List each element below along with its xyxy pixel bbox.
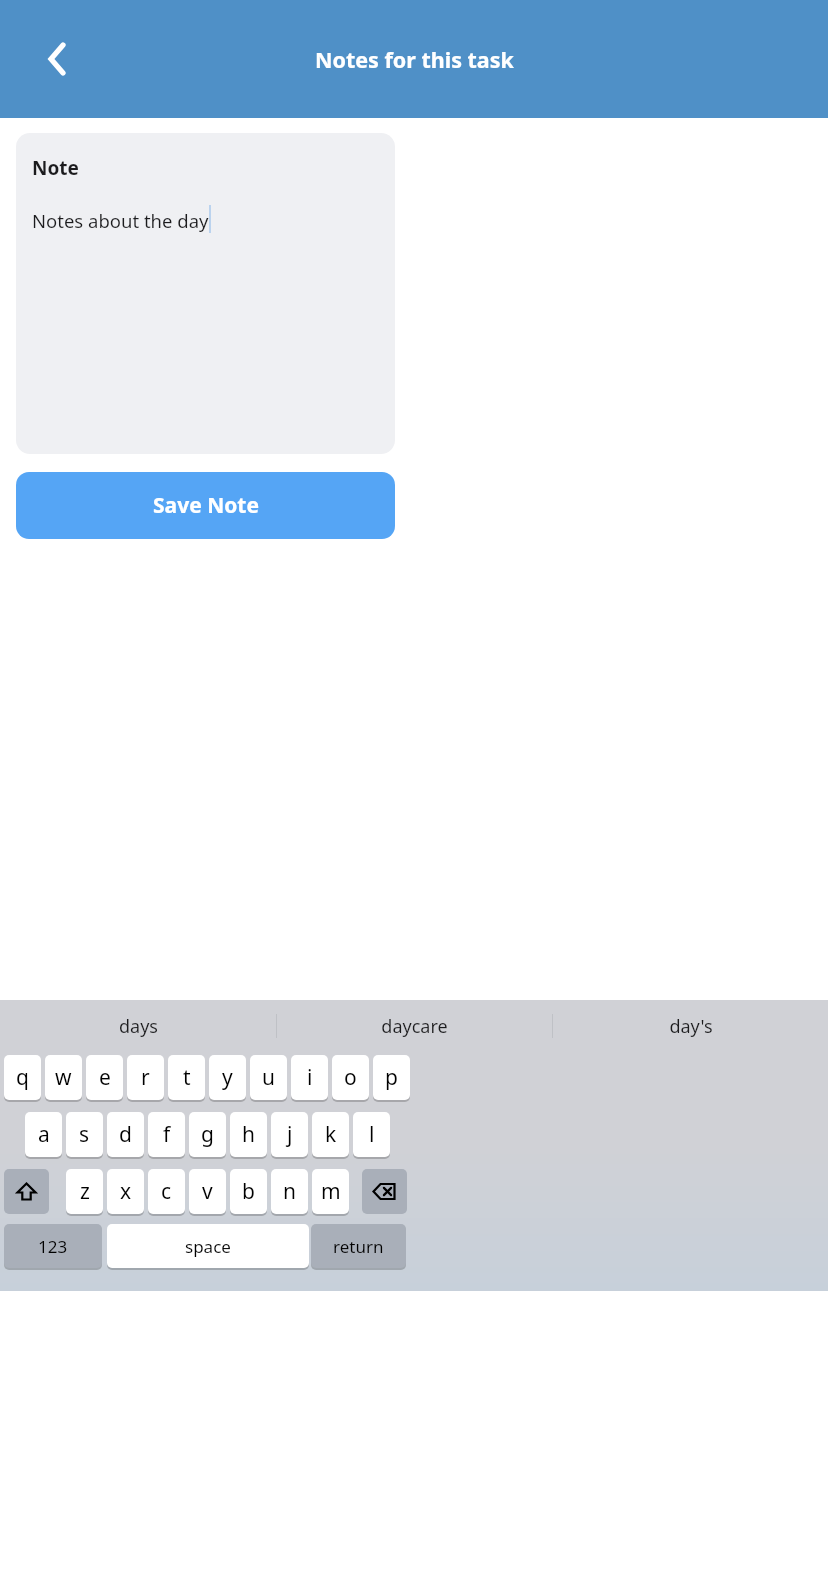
button[interactable]: Shift [4,1169,49,1214]
button[interactable]: s [66,1112,103,1157]
button[interactable]: t [168,1055,205,1100]
button[interactable]: day's [553,1000,828,1052]
button[interactable]: z [66,1169,103,1214]
staticText: q [16,1063,29,1092]
button[interactable]: q [4,1055,41,1100]
button[interactable]: Back [22,24,92,94]
button[interactable]: f [148,1112,185,1157]
button[interactable]: w [45,1055,82,1100]
staticText: Notes for this task [315,45,514,74]
button[interactable]: l [353,1112,390,1157]
staticText: h [242,1120,255,1149]
staticText: a [38,1120,50,1149]
staticText: w [55,1063,72,1092]
button[interactable]: e [86,1055,123,1100]
button[interactable]: j [271,1112,308,1157]
button[interactable]: m [312,1169,349,1214]
button[interactable]: d [107,1112,144,1157]
staticText: i [307,1063,313,1092]
button[interactable]: Note [16,133,395,454]
staticText: Save Note [153,491,259,520]
button[interactable]: return [311,1224,406,1268]
button[interactable]: o [332,1055,369,1100]
button[interactable]: c [148,1169,185,1214]
button[interactable]: k [312,1112,349,1157]
staticText: e [99,1063,111,1092]
staticText: space [185,1235,231,1258]
button[interactable]: x [107,1169,144,1214]
staticText: y [222,1063,233,1092]
staticText: n [283,1177,296,1206]
staticText: day's [669,1014,713,1039]
staticText: 123 [38,1235,68,1258]
staticText: days [119,1014,158,1039]
staticText: return [333,1235,384,1258]
staticText: d [119,1120,132,1149]
staticText: o [344,1063,357,1092]
button[interactable]: 123 [4,1224,102,1268]
staticText: g [201,1120,214,1149]
staticText: k [325,1120,337,1149]
button[interactable]: y [209,1055,246,1100]
button[interactable]: p [373,1055,410,1100]
staticText: Notes about the day [32,208,209,233]
staticText: l [369,1120,375,1149]
button[interactable]: r [127,1055,164,1100]
staticText: m [321,1177,341,1206]
button[interactable]: b [230,1169,267,1214]
button[interactable]: v [189,1169,226,1214]
button[interactable]: Save Note [16,472,395,539]
staticText: v [202,1177,213,1206]
staticText: daycare [381,1014,448,1039]
button[interactable]: u [250,1055,287,1100]
staticText: s [79,1120,90,1149]
staticText: j [287,1120,293,1149]
staticText: u [262,1063,275,1092]
staticText: c [161,1177,172,1206]
button[interactable]: g [189,1112,226,1157]
button[interactable]: i [291,1055,328,1100]
staticText: p [385,1063,398,1092]
staticText: Note [32,155,79,181]
staticText: x [120,1177,132,1206]
staticText: z [80,1177,90,1206]
button[interactable]: a [25,1112,62,1157]
staticText: b [242,1177,255,1206]
staticText: t [183,1063,191,1092]
button[interactable]: Backspace [362,1169,407,1214]
staticText: f [163,1120,171,1149]
button[interactable]: daycare [277,1000,552,1052]
button[interactable]: space [107,1224,309,1268]
staticText: r [141,1063,150,1092]
button[interactable]: days [0,1000,276,1052]
button[interactable]: n [271,1169,308,1214]
button[interactable]: h [230,1112,267,1157]
